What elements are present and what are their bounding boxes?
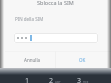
button[interactable]: OK bbox=[75, 55, 90, 65]
staticText: PIN della SIM bbox=[15, 16, 44, 22]
staticText: ABC bbox=[55, 81, 61, 83]
button[interactable]: 2 bbox=[41, 76, 69, 83]
staticText: OK bbox=[79, 57, 86, 63]
staticText: Annulla bbox=[24, 57, 41, 63]
staticText: Sblocca la SIM bbox=[37, 0, 74, 6]
button[interactable] bbox=[14, 33, 98, 43]
staticText: 1 bbox=[25, 76, 30, 83]
staticText: 2 bbox=[49, 76, 54, 83]
staticText: 3 bbox=[77, 76, 82, 83]
button[interactable]: 3 bbox=[69, 76, 97, 83]
staticText: DEF bbox=[83, 81, 89, 83]
button[interactable]: 1 bbox=[13, 76, 41, 83]
button[interactable]: Annulla bbox=[20, 55, 44, 65]
